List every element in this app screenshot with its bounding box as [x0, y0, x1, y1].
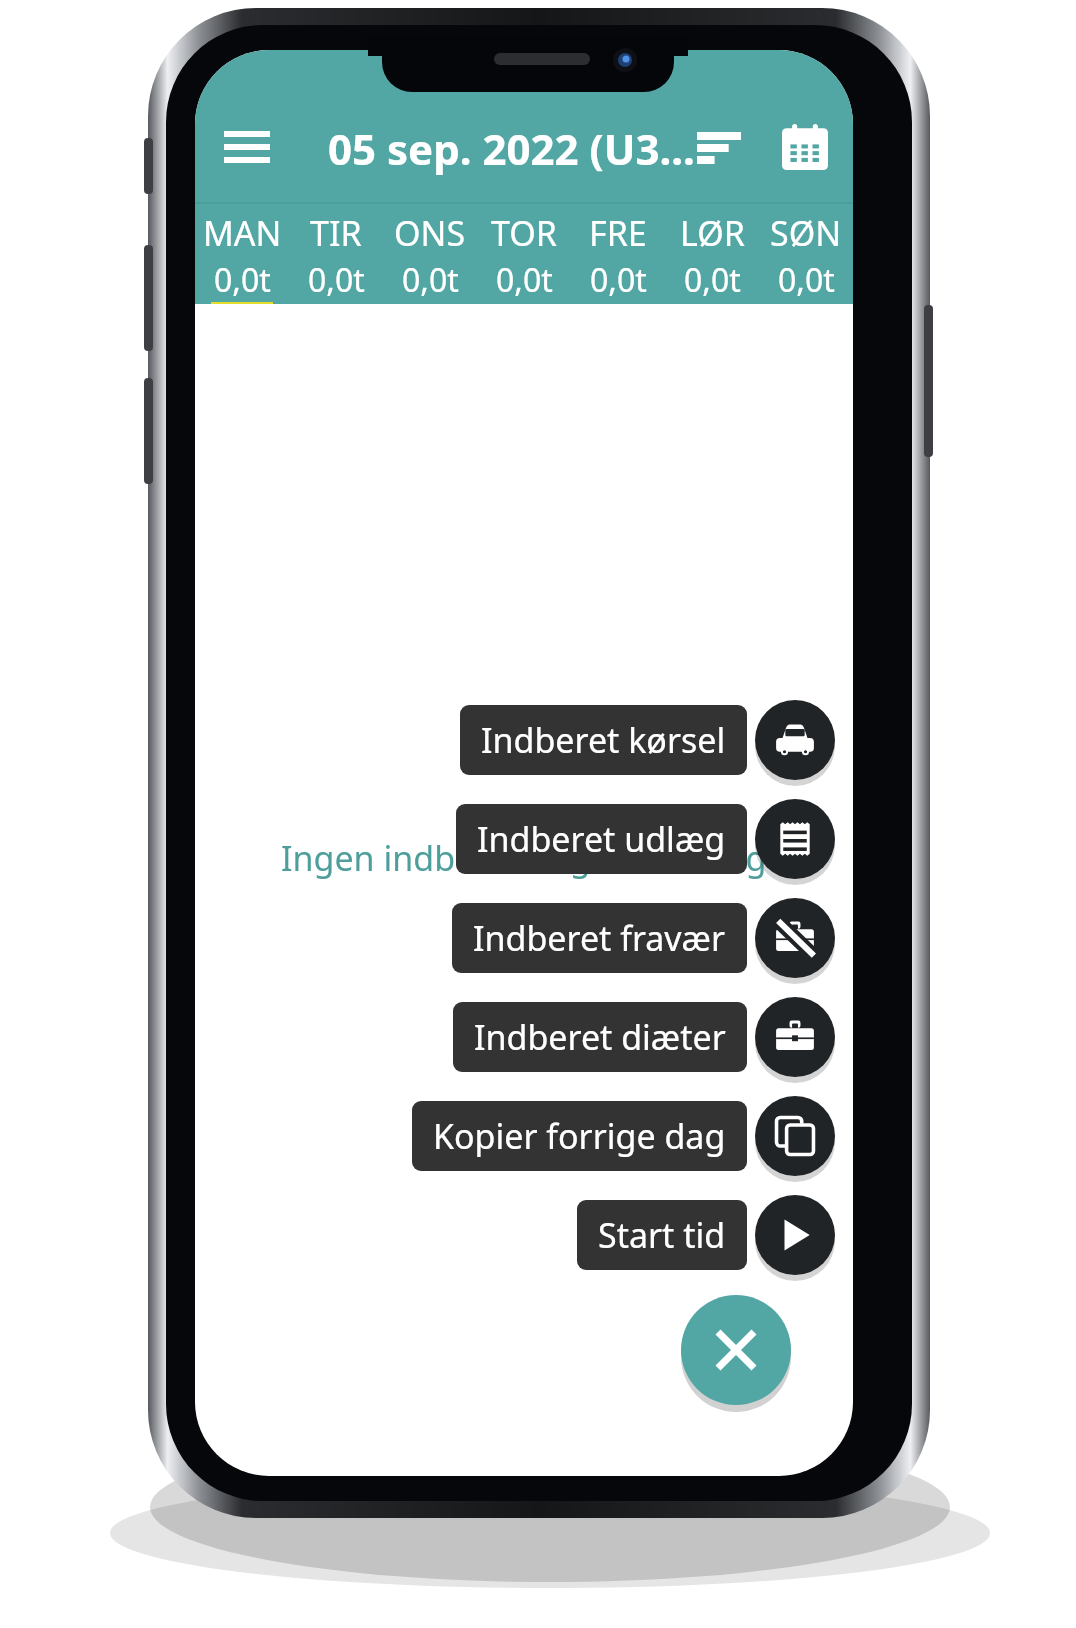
button[interactable]: FRE [571, 204, 665, 304]
staticText: Kopier forrige dag [433, 1113, 726, 1159]
staticText: 0,0t [496, 258, 553, 302]
button[interactable]: Kopier forrige dag [412, 1101, 747, 1171]
button[interactable]: Start tid [755, 1195, 835, 1275]
button[interactable]: SØN [759, 204, 853, 304]
button[interactable]: MAN [195, 204, 289, 304]
button[interactable]: Kopier forrige dag [755, 1096, 835, 1176]
staticText: 0,0t [778, 258, 835, 302]
staticText: SØN [770, 210, 842, 256]
button[interactable]: Indberet fravær [452, 903, 747, 973]
button[interactable]: Calendar [763, 105, 847, 189]
staticText: MAN [203, 210, 282, 256]
staticText: 0,0t [214, 258, 271, 302]
staticText: Indberet diæter [474, 1014, 726, 1060]
staticText: 0,0t [590, 258, 647, 302]
button[interactable]: Start tid [577, 1200, 747, 1270]
button[interactable]: Sort [677, 105, 761, 189]
button[interactable]: Indberet kørsel [460, 705, 747, 775]
staticText: Indberet fravær [473, 915, 726, 961]
button[interactable]: Indberet diæter [755, 997, 835, 1077]
button[interactable]: ONS [383, 204, 477, 304]
button[interactable]: Menu [205, 105, 289, 189]
staticText: 0,0t [402, 258, 459, 302]
staticText: 0,0t [684, 258, 741, 302]
button[interactable]: Indberet udlæg [755, 799, 835, 879]
staticText: Indberet kørsel [481, 717, 726, 763]
button[interactable]: Indberet udlæg [456, 804, 747, 874]
staticText: 0,0t [308, 258, 365, 302]
staticText: Ingen indberetninger for i dag [281, 835, 767, 881]
button[interactable]: Close menu [681, 1295, 791, 1405]
button[interactable]: Indberet diæter [453, 1002, 747, 1072]
staticText: TOR [491, 210, 557, 256]
staticText: LØR [680, 210, 745, 256]
staticText: 05 sep. 2022 (U3... [328, 120, 695, 177]
button[interactable]: LØR [665, 204, 759, 304]
button[interactable]: Indberet fravær [755, 898, 835, 978]
staticText: FRE [589, 210, 647, 256]
button[interactable]: TIR [289, 204, 383, 304]
button[interactable]: Indberet kørsel [755, 700, 835, 780]
staticText: Indberet udlæg [477, 816, 726, 862]
button[interactable]: TOR [477, 204, 571, 304]
staticText: ONS [394, 210, 466, 256]
staticText: TIR [310, 210, 362, 256]
staticText: Start tid [598, 1212, 726, 1258]
